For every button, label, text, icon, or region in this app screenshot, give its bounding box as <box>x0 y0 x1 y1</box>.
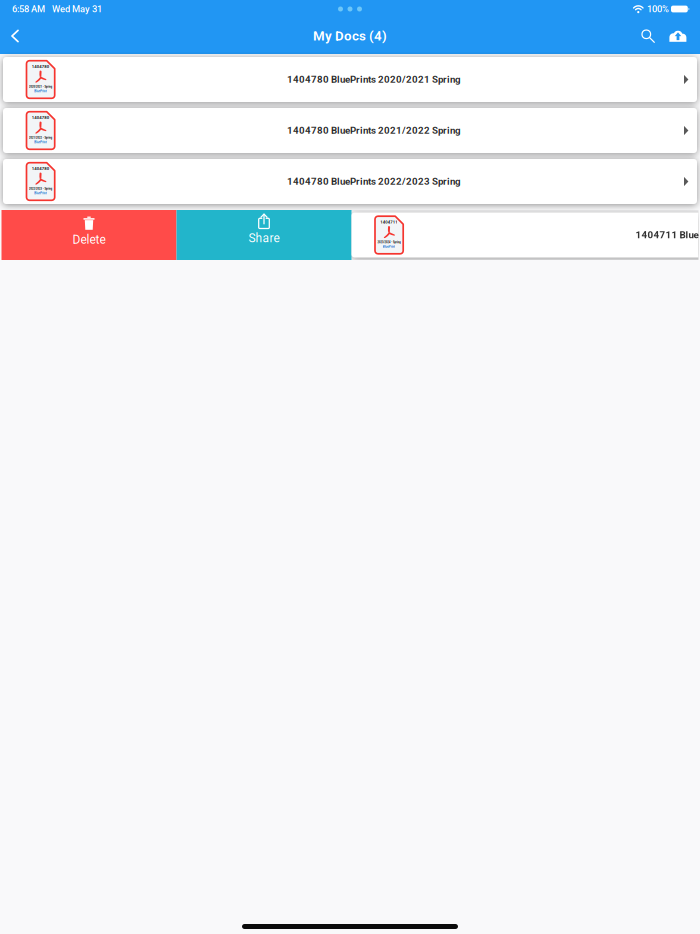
staticText: Share <box>248 231 279 245</box>
staticText: Wed May 31 <box>52 3 102 14</box>
button[interactable]: 1404711 BluePrints 2023/2024 Spring <box>351 212 700 257</box>
button[interactable]: Back <box>3 21 27 51</box>
button[interactable]: 1404780 BluePrints 2020/2021 Spring <box>3 57 697 102</box>
staticText: BluePrint <box>16 170 66 184</box>
button[interactable]: 1404780 BluePrints 2022/2023 Spring <box>3 159 697 204</box>
staticText: 1404780 BluePrints 2021/2022 Spring <box>287 125 461 136</box>
staticText: Delete <box>72 233 105 247</box>
staticText: BluePrint <box>16 119 66 133</box>
button[interactable]: Delete <box>1 210 176 260</box>
staticText: 6:58 AM <box>12 3 45 14</box>
staticText: 1404780 BluePrints 2022/2023 Spring <box>287 176 461 187</box>
staticText: My Docs (4) <box>313 28 387 44</box>
staticText: 1404780 <box>6 69 76 89</box>
staticText: 1404711 BluePrints 2023/2024 Spring <box>635 229 700 241</box>
button[interactable]: Search <box>633 21 663 51</box>
staticText: 1404780 <box>6 18 76 38</box>
staticText: 2023/2024 - Spring <box>343 258 436 271</box>
button[interactable]: Upload <box>663 21 693 51</box>
staticText: 2022/2023 - Spring <box>0 204 87 217</box>
staticText: 2021/2022 - Spring <box>0 153 87 166</box>
button[interactable]: 1404711 BluePrints 2023/2024 Spring <box>351 210 698 260</box>
staticText: 2020/2021 - Spring <box>0 102 87 115</box>
staticText: 1404780 BluePrints 2020/2021 Spring <box>287 74 461 85</box>
staticText: 1404711 <box>354 173 424 193</box>
staticText: 1404780 <box>6 120 76 140</box>
button[interactable]: 1404780 BluePrints 2021/2022 Spring <box>3 108 697 153</box>
button[interactable]: Share <box>176 210 351 260</box>
staticText: 100% <box>647 3 669 14</box>
